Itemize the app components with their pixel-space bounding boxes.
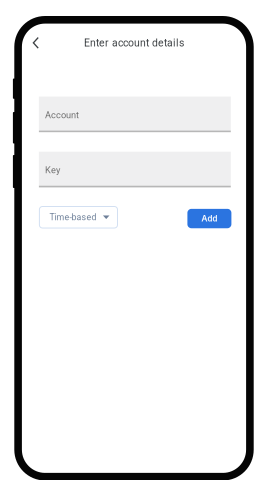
staticText: Enter account details <box>84 37 184 49</box>
button[interactable]: Time-based <box>39 206 118 228</box>
staticText: Time-based <box>49 212 96 222</box>
staticText: Add <box>201 213 217 224</box>
staticText: Key <box>45 165 60 176</box>
button[interactable]: Add <box>187 207 231 227</box>
button[interactable]: Back <box>25 30 47 54</box>
staticText: Account <box>45 110 79 120</box>
